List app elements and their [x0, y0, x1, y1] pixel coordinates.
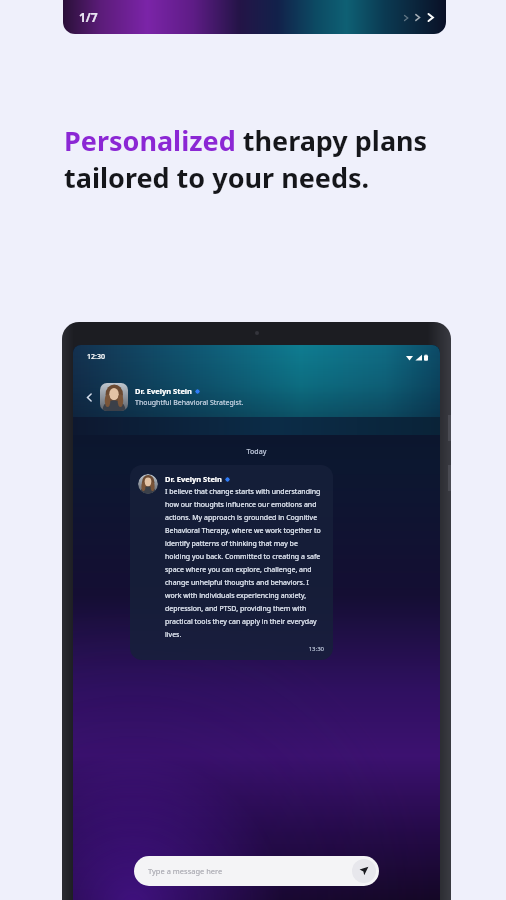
button[interactable]: Send — [352, 859, 376, 883]
staticText: 12:30 — [87, 352, 105, 362]
staticText: 1/7 — [79, 9, 98, 25]
staticText: Dr. Evelyn Stein — [165, 474, 222, 484]
button[interactable]: Back — [81, 389, 97, 405]
button[interactable]: Type a message here — [134, 856, 379, 886]
staticText: tailored to your needs. — [64, 159, 370, 196]
button[interactable]: Back — [81, 383, 440, 411]
staticText: 13:30 — [165, 645, 324, 653]
staticText: Dr. Evelyn Stein — [135, 386, 192, 396]
staticText: I believe that change starts with unders… — [165, 487, 324, 639]
staticText: Today — [73, 447, 440, 457]
staticText: Personalized therapy plans — [64, 122, 428, 159]
button[interactable]: 1/7 — [63, 0, 446, 34]
button[interactable]: Dr. Evelyn Stein — [130, 465, 333, 660]
staticText: Thoughtful Behavioral Strategist. — [135, 398, 244, 408]
button[interactable]: Next — [402, 12, 436, 23]
staticText: Type a message here — [148, 866, 352, 876]
